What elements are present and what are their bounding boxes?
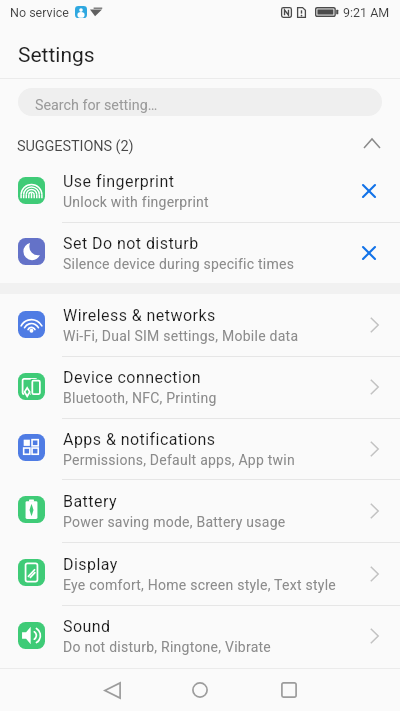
staticText: Do not disturb, Ringtone, Vibrate xyxy=(63,639,272,655)
staticText: Apps & notifications xyxy=(63,430,216,449)
staticText: Bluetooth, NFC, Printing xyxy=(63,390,217,406)
button[interactable]: Sound xyxy=(0,605,400,667)
staticText: Sound xyxy=(63,617,111,636)
staticText: No service xyxy=(10,5,69,20)
staticText: Eye comfort, Home screen style, Text sty… xyxy=(63,577,336,593)
staticText: Device connection xyxy=(63,368,202,387)
staticText: SUGGESTIONS (2) xyxy=(17,138,134,155)
other: Collapse suggestions xyxy=(364,139,380,148)
button[interactable]: Dismiss Set Do not disturb xyxy=(352,237,384,269)
staticText: Set Do not disturb xyxy=(63,234,199,253)
button[interactable]: Display xyxy=(0,542,400,605)
staticText: Search for setting… xyxy=(35,97,158,114)
button[interactable]: SUGGESTIONS (2) xyxy=(0,127,400,160)
staticText: Unlock with fingerprint xyxy=(63,194,209,210)
staticText: Silence device during specific times xyxy=(63,256,295,272)
button[interactable]: Set Do not disturb xyxy=(0,222,400,283)
staticText: Display xyxy=(63,555,118,574)
staticText: Battery xyxy=(63,492,117,511)
staticText: Power saving mode, Battery usage xyxy=(63,514,286,530)
button[interactable]: Home xyxy=(175,668,225,710)
staticText: Permissions, Default apps, App twin xyxy=(63,452,295,468)
button[interactable]: Use fingerprint xyxy=(0,160,400,222)
button[interactable]: Device connection xyxy=(0,356,400,418)
staticText: Settings xyxy=(18,43,95,68)
button[interactable]: Search for setting… xyxy=(18,88,382,116)
button[interactable]: Recent apps xyxy=(264,668,314,710)
staticText: Wireless & networks xyxy=(63,306,216,325)
button[interactable]: Battery xyxy=(0,479,400,542)
button[interactable]: Back xyxy=(87,668,137,710)
staticText: 9:21 AM xyxy=(343,5,390,20)
button[interactable]: Wireless & networks xyxy=(0,294,400,356)
button[interactable]: Dismiss Use fingerprint xyxy=(352,175,384,207)
staticText: Wi-Fi, Dual SIM settings, Mobile data xyxy=(63,328,299,344)
button[interactable]: Apps & notifications xyxy=(0,418,400,479)
staticText: Use fingerprint xyxy=(63,172,175,191)
